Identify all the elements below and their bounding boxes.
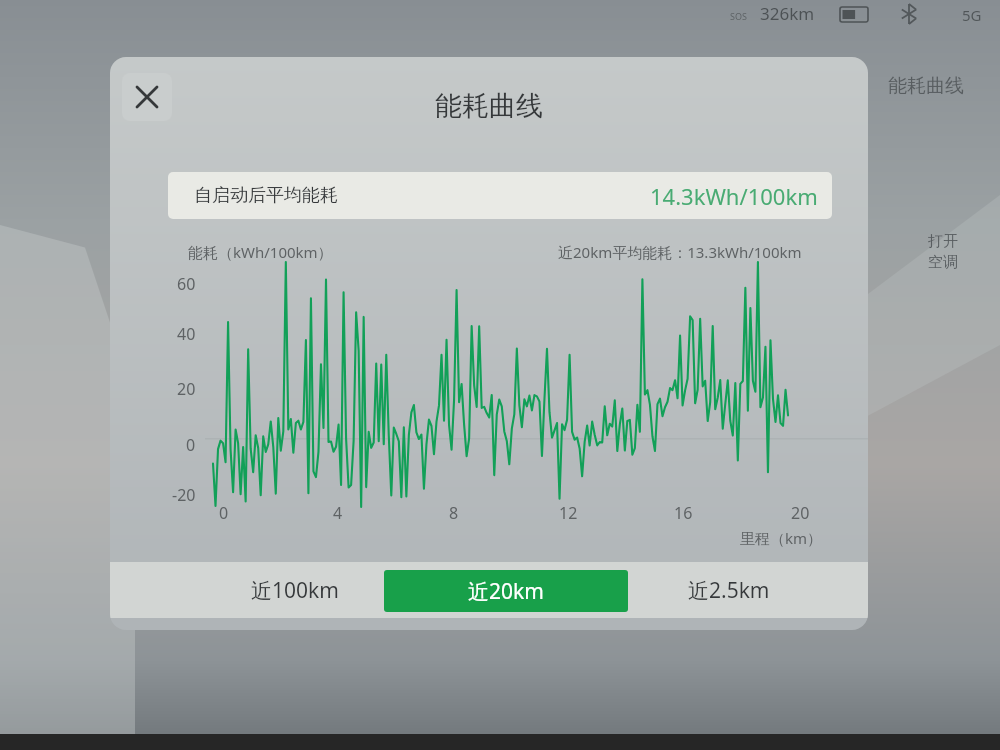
- staticText: 自启动后平均能耗: [194, 184, 338, 207]
- staticText: 近2.5km: [688, 576, 770, 605]
- staticText: 里程（km）: [740, 528, 823, 548]
- button[interactable]: 自启动后平均能耗: [168, 172, 832, 219]
- button[interactable]: 近2.5km: [640, 562, 818, 618]
- staticText: 0: [186, 434, 196, 456]
- staticText: 近100km: [251, 576, 339, 605]
- staticText: 能耗曲线: [435, 89, 543, 123]
- staticText: 8: [449, 502, 459, 522]
- staticText: 0: [219, 502, 229, 522]
- staticText: 16: [674, 502, 693, 522]
- staticText: 12: [559, 502, 578, 522]
- button[interactable]: 近100km: [206, 562, 384, 618]
- button[interactable]: Close: [122, 73, 172, 121]
- staticText: 能耗（kWh/100km）: [188, 242, 333, 262]
- staticText: 40: [177, 323, 196, 345]
- button[interactable]: 近20km: [384, 570, 628, 612]
- staticText: 5G: [962, 5, 982, 25]
- staticText: 326km: [760, 2, 815, 25]
- staticText: 4: [333, 502, 343, 522]
- staticText: 能耗曲线: [888, 74, 964, 98]
- staticText: 20: [177, 378, 196, 400]
- staticText: 20: [791, 502, 810, 522]
- staticText: -20: [172, 484, 196, 506]
- staticText: 14.3kWh/100km: [650, 181, 818, 211]
- staticText: 打开 空调: [928, 232, 958, 272]
- staticText: 近20km平均能耗：13.3kWh/100km: [558, 242, 802, 262]
- staticText: SOS: [730, 10, 747, 22]
- staticText: 近20km: [468, 577, 544, 606]
- staticText: 60: [177, 273, 196, 295]
